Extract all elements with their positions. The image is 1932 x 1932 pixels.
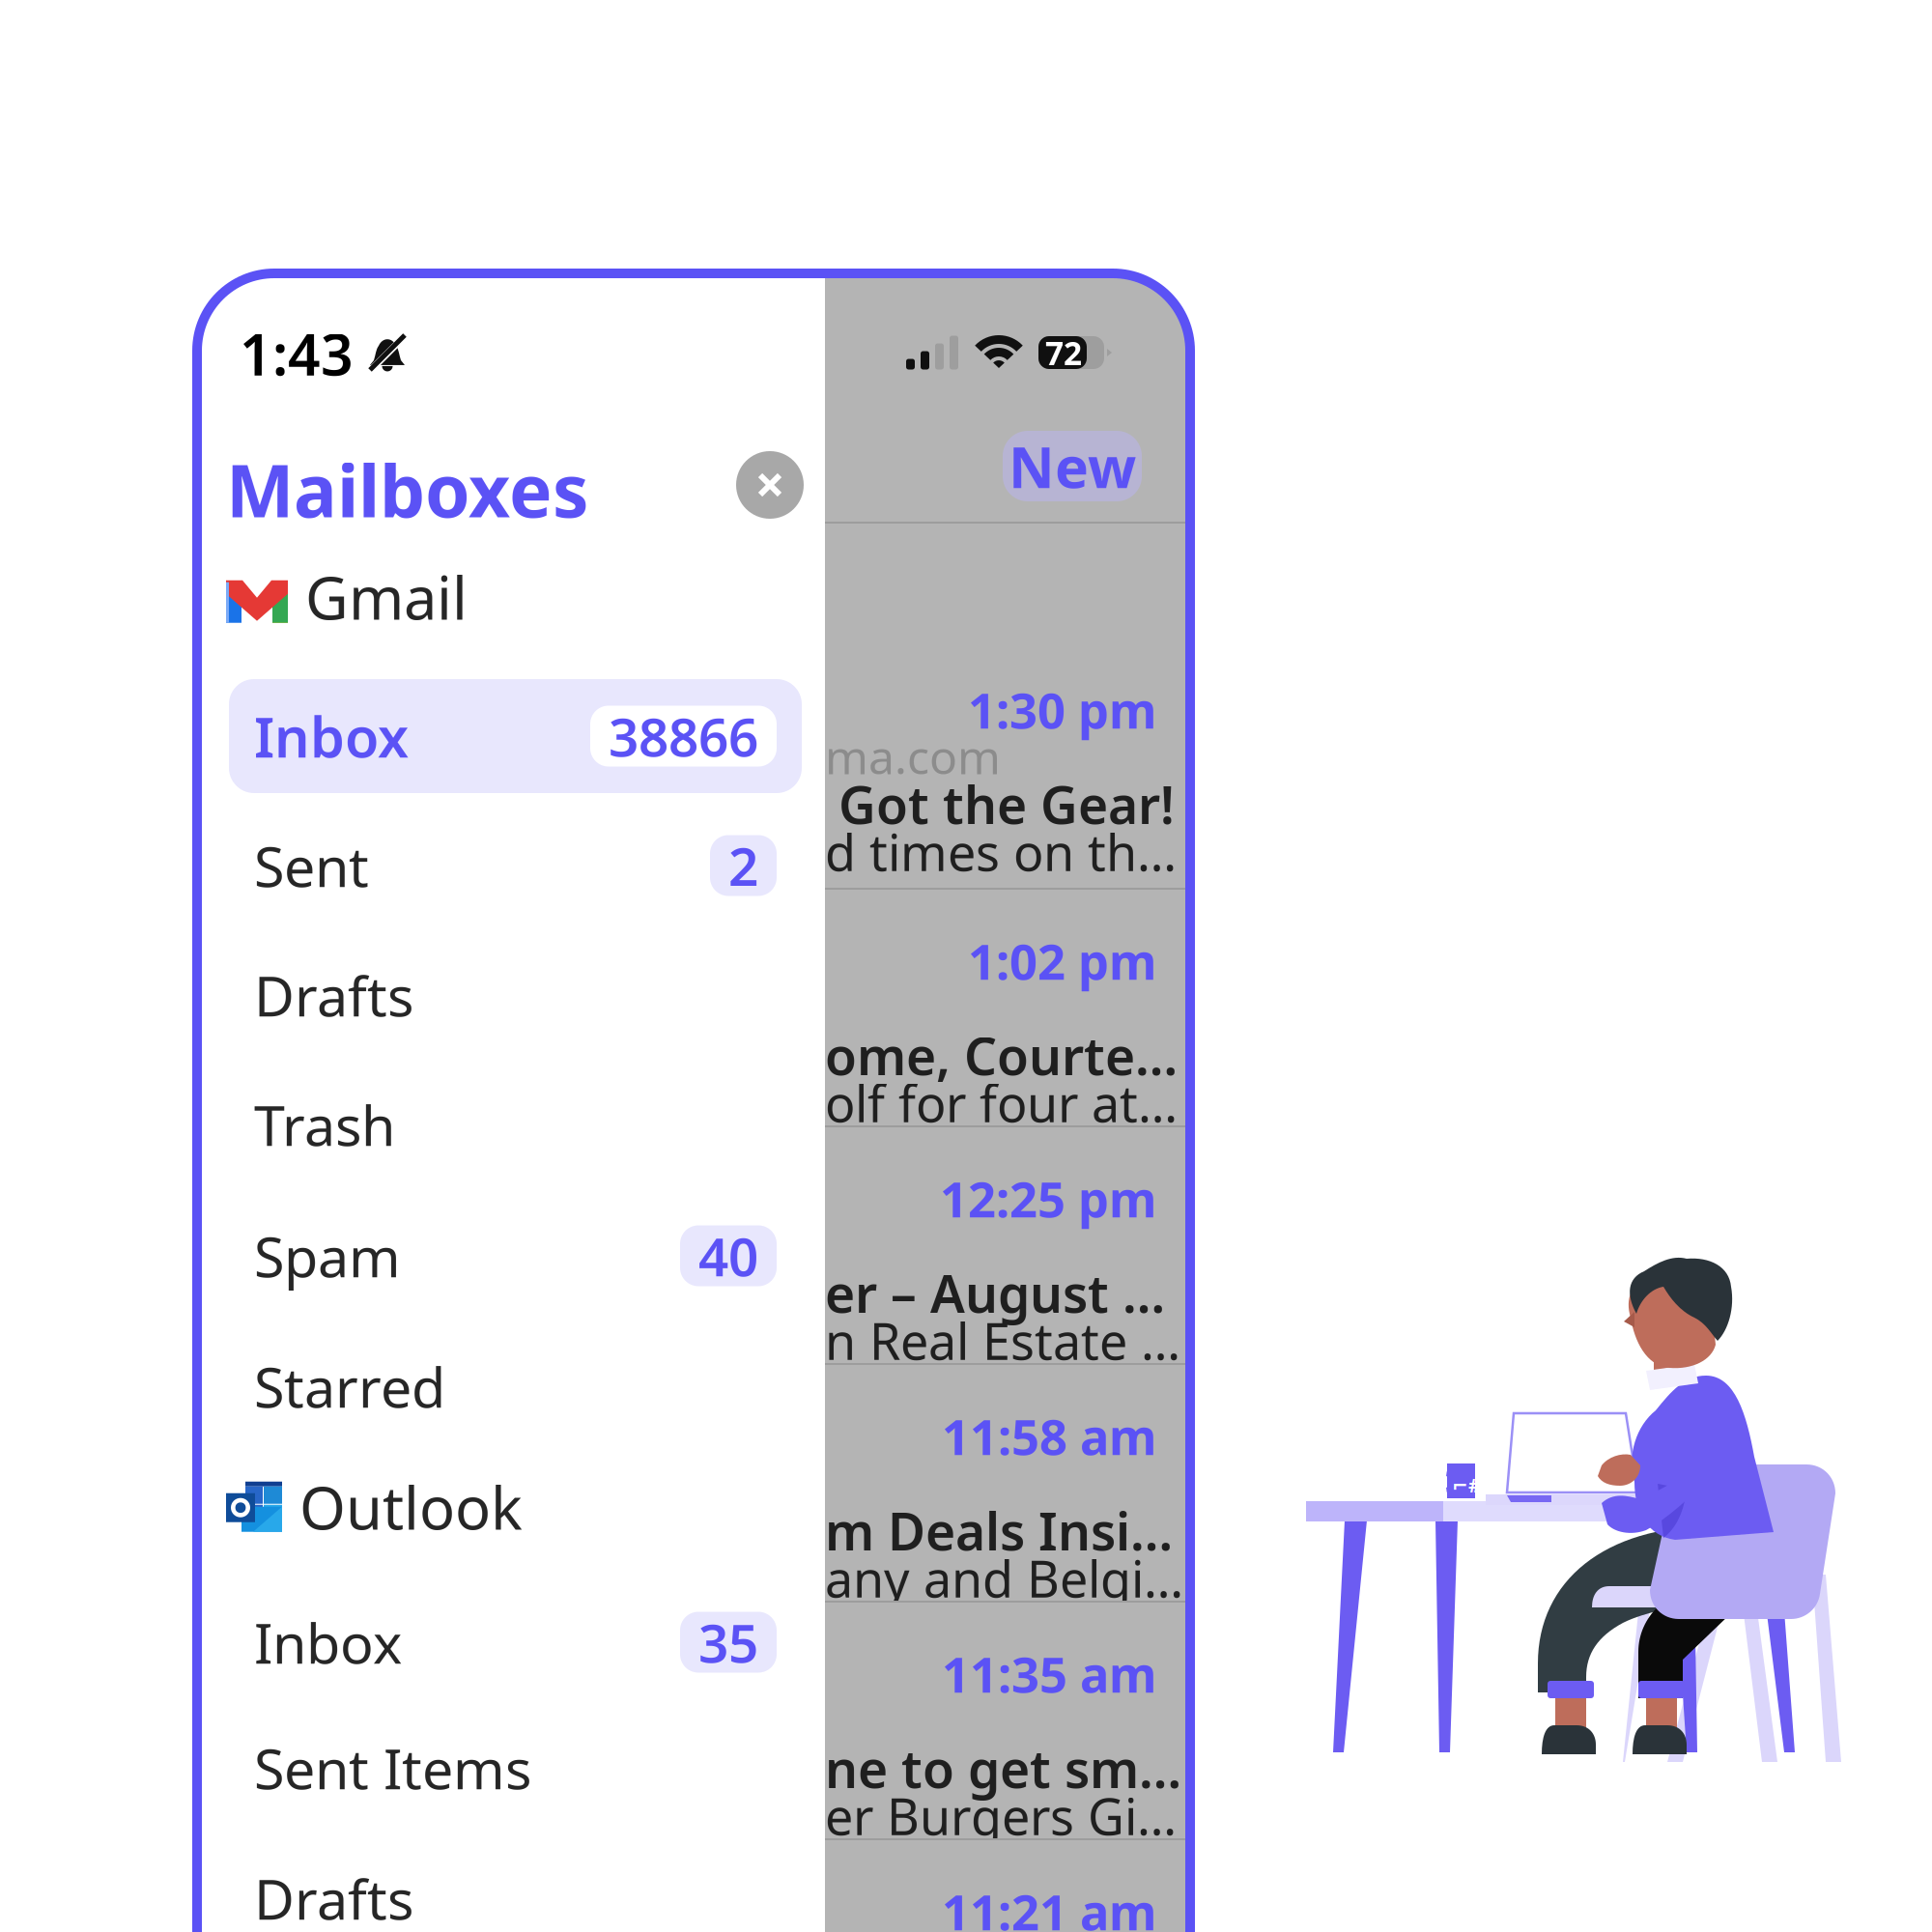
staticText: any and Belgium wi… xyxy=(825,1545,1187,1611)
staticText: ma.com xyxy=(825,725,1001,787)
button[interactable]: 11:35 am xyxy=(825,1603,1187,1840)
button[interactable]: Trash xyxy=(229,1067,802,1181)
staticText: Drafts xyxy=(254,958,413,1032)
staticText: Inbox xyxy=(254,1605,402,1679)
staticText: 72 xyxy=(1045,331,1082,374)
button[interactable]: 1:02 pm xyxy=(825,890,1187,1127)
button[interactable]: Drafts xyxy=(229,938,802,1052)
button[interactable]: Drafts xyxy=(229,1841,802,1932)
staticText: Trash xyxy=(254,1088,395,1161)
button[interactable]: 11:21 am xyxy=(825,1840,1187,1932)
button[interactable]: New xyxy=(1003,431,1142,501)
staticText: Starred xyxy=(254,1349,445,1423)
staticText: 35 xyxy=(698,1607,758,1677)
staticText: Spam xyxy=(254,1219,401,1293)
button[interactable]: 1:30 pm xyxy=(825,524,1187,890)
button[interactable]: 12:25 pm xyxy=(825,1127,1187,1365)
staticText: Inbox xyxy=(254,699,409,773)
staticText: Outlook xyxy=(299,1467,523,1546)
staticText: 2 xyxy=(728,830,758,901)
staticText: Sent xyxy=(254,829,369,902)
staticText: Drafts xyxy=(254,1861,413,1932)
staticText: ⌐# xyxy=(1452,1472,1481,1498)
button[interactable]: Spam xyxy=(229,1199,802,1313)
staticText: 38866 xyxy=(609,701,758,771)
staticText: 1:02 pm xyxy=(968,928,1156,993)
button[interactable]: Starred xyxy=(229,1329,802,1443)
staticText: er Burgers Giveawa… xyxy=(825,1782,1187,1849)
staticText: 12:25 pm xyxy=(940,1166,1156,1231)
staticText: 40 xyxy=(698,1221,758,1291)
button[interactable]: Sent Items xyxy=(229,1711,802,1825)
staticText: 11:21 am xyxy=(942,1879,1156,1932)
staticText: Mailboxes xyxy=(226,441,588,537)
staticText: olf for four at a Tro… xyxy=(825,1069,1187,1136)
staticText: 11:58 am xyxy=(942,1404,1156,1469)
staticText: 1:43 xyxy=(240,316,354,391)
staticText: Got the Gear! xyxy=(825,770,1175,838)
staticText: Gmail xyxy=(305,557,468,636)
staticText: 11:35 am xyxy=(942,1641,1156,1706)
staticText: ne to get smashed… xyxy=(825,1734,1187,1802)
button[interactable]: Sent xyxy=(229,809,802,923)
staticText: m Deals Inside xyxy=(825,1496,1187,1565)
staticText: ome, Courtesy of… xyxy=(825,1021,1187,1089)
staticText: New xyxy=(1009,428,1136,504)
button[interactable]: Inbox xyxy=(229,679,802,793)
staticText: er – August 2025 xyxy=(825,1259,1187,1327)
button[interactable]: Close sidebar xyxy=(736,451,804,519)
staticText: 1:30 pm xyxy=(968,677,1156,742)
button[interactable]: Inbox xyxy=(229,1585,802,1699)
staticText: n Real Estate View… xyxy=(825,1307,1187,1374)
button[interactable]: 11:58 am xyxy=(825,1365,1187,1603)
staticText: Sent Items xyxy=(254,1731,531,1804)
staticText: d times on the go. xyxy=(825,818,1187,885)
